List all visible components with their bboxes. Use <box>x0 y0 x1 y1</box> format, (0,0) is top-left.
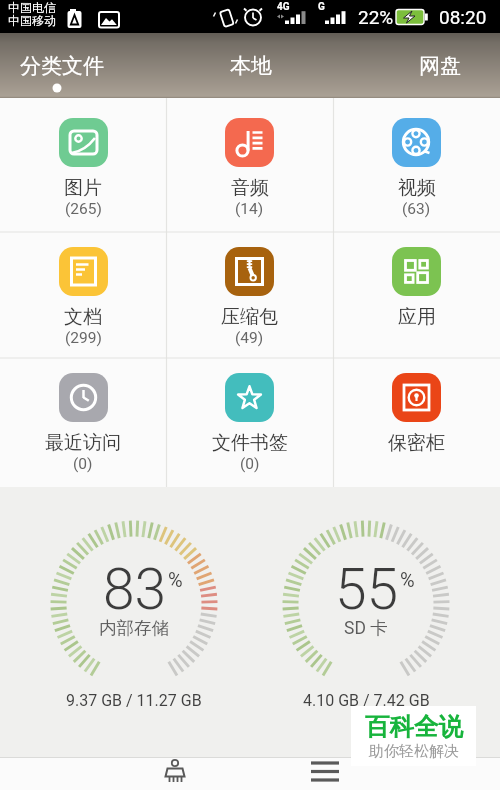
staticText: 4.10 GB / 7.42 GB <box>303 691 430 710</box>
staticText: 网盘 <box>419 53 461 79</box>
staticText: 本地 <box>230 53 272 79</box>
button[interactable]: 保密柜 <box>333 358 500 487</box>
staticText: 保密柜 <box>388 431 445 455</box>
button[interactable]: 图片 <box>0 98 166 232</box>
staticText: (299) <box>65 329 102 347</box>
button[interactable]: 应用 <box>333 232 500 358</box>
staticText: 文件书签 <box>212 431 288 455</box>
staticText: (14) <box>235 200 264 218</box>
staticText: 9.37 GB / 11.27 GB <box>66 691 202 710</box>
staticText: 内部存储 <box>99 617 169 639</box>
staticText: 百科全说 <box>365 711 463 742</box>
button[interactable] <box>155 757 195 790</box>
button[interactable]: 最近访问 <box>0 358 166 487</box>
button[interactable]: 视频 <box>333 98 500 232</box>
staticText: % <box>168 568 183 591</box>
staticText: (63) <box>402 200 431 218</box>
button[interactable]: 本地 <box>211 49 291 83</box>
button[interactable]: 网盘 <box>400 49 480 83</box>
staticText: 图片 <box>64 176 102 200</box>
button[interactable] <box>305 757 345 790</box>
staticText: 分类文件 <box>20 53 104 79</box>
staticText: 08:20 <box>439 6 487 28</box>
staticText: 最近访问 <box>45 431 121 455</box>
button[interactable]: 文件书签 <box>166 358 333 487</box>
staticText: 83 <box>103 556 167 623</box>
staticText: 音频 <box>231 176 269 200</box>
staticText: % <box>400 568 415 591</box>
button[interactable]: 文档 <box>0 232 166 358</box>
staticText: (49) <box>235 329 264 347</box>
staticText: 压缩包 <box>221 305 278 329</box>
staticText: G <box>318 1 325 13</box>
staticText: (0) <box>73 455 93 473</box>
staticText: (265) <box>65 200 102 218</box>
staticText: (0) <box>240 455 260 473</box>
staticText: SD 卡 <box>344 617 388 639</box>
staticText: 应用 <box>398 305 436 329</box>
staticText: 4G <box>277 1 290 13</box>
staticText: 55 <box>335 556 399 623</box>
staticText: 文档 <box>64 305 102 329</box>
button[interactable]: 分类文件 <box>11 49 112 83</box>
staticText: 视频 <box>398 176 436 200</box>
staticText: 助你轻松解决 <box>369 742 459 761</box>
staticText: 22% <box>358 6 394 28</box>
button[interactable]: 压缩包 <box>166 232 333 358</box>
staticText: 中国电信 <box>8 0 56 15</box>
button[interactable]: 音频 <box>166 98 333 232</box>
staticText: 中国移动 <box>8 13 56 28</box>
